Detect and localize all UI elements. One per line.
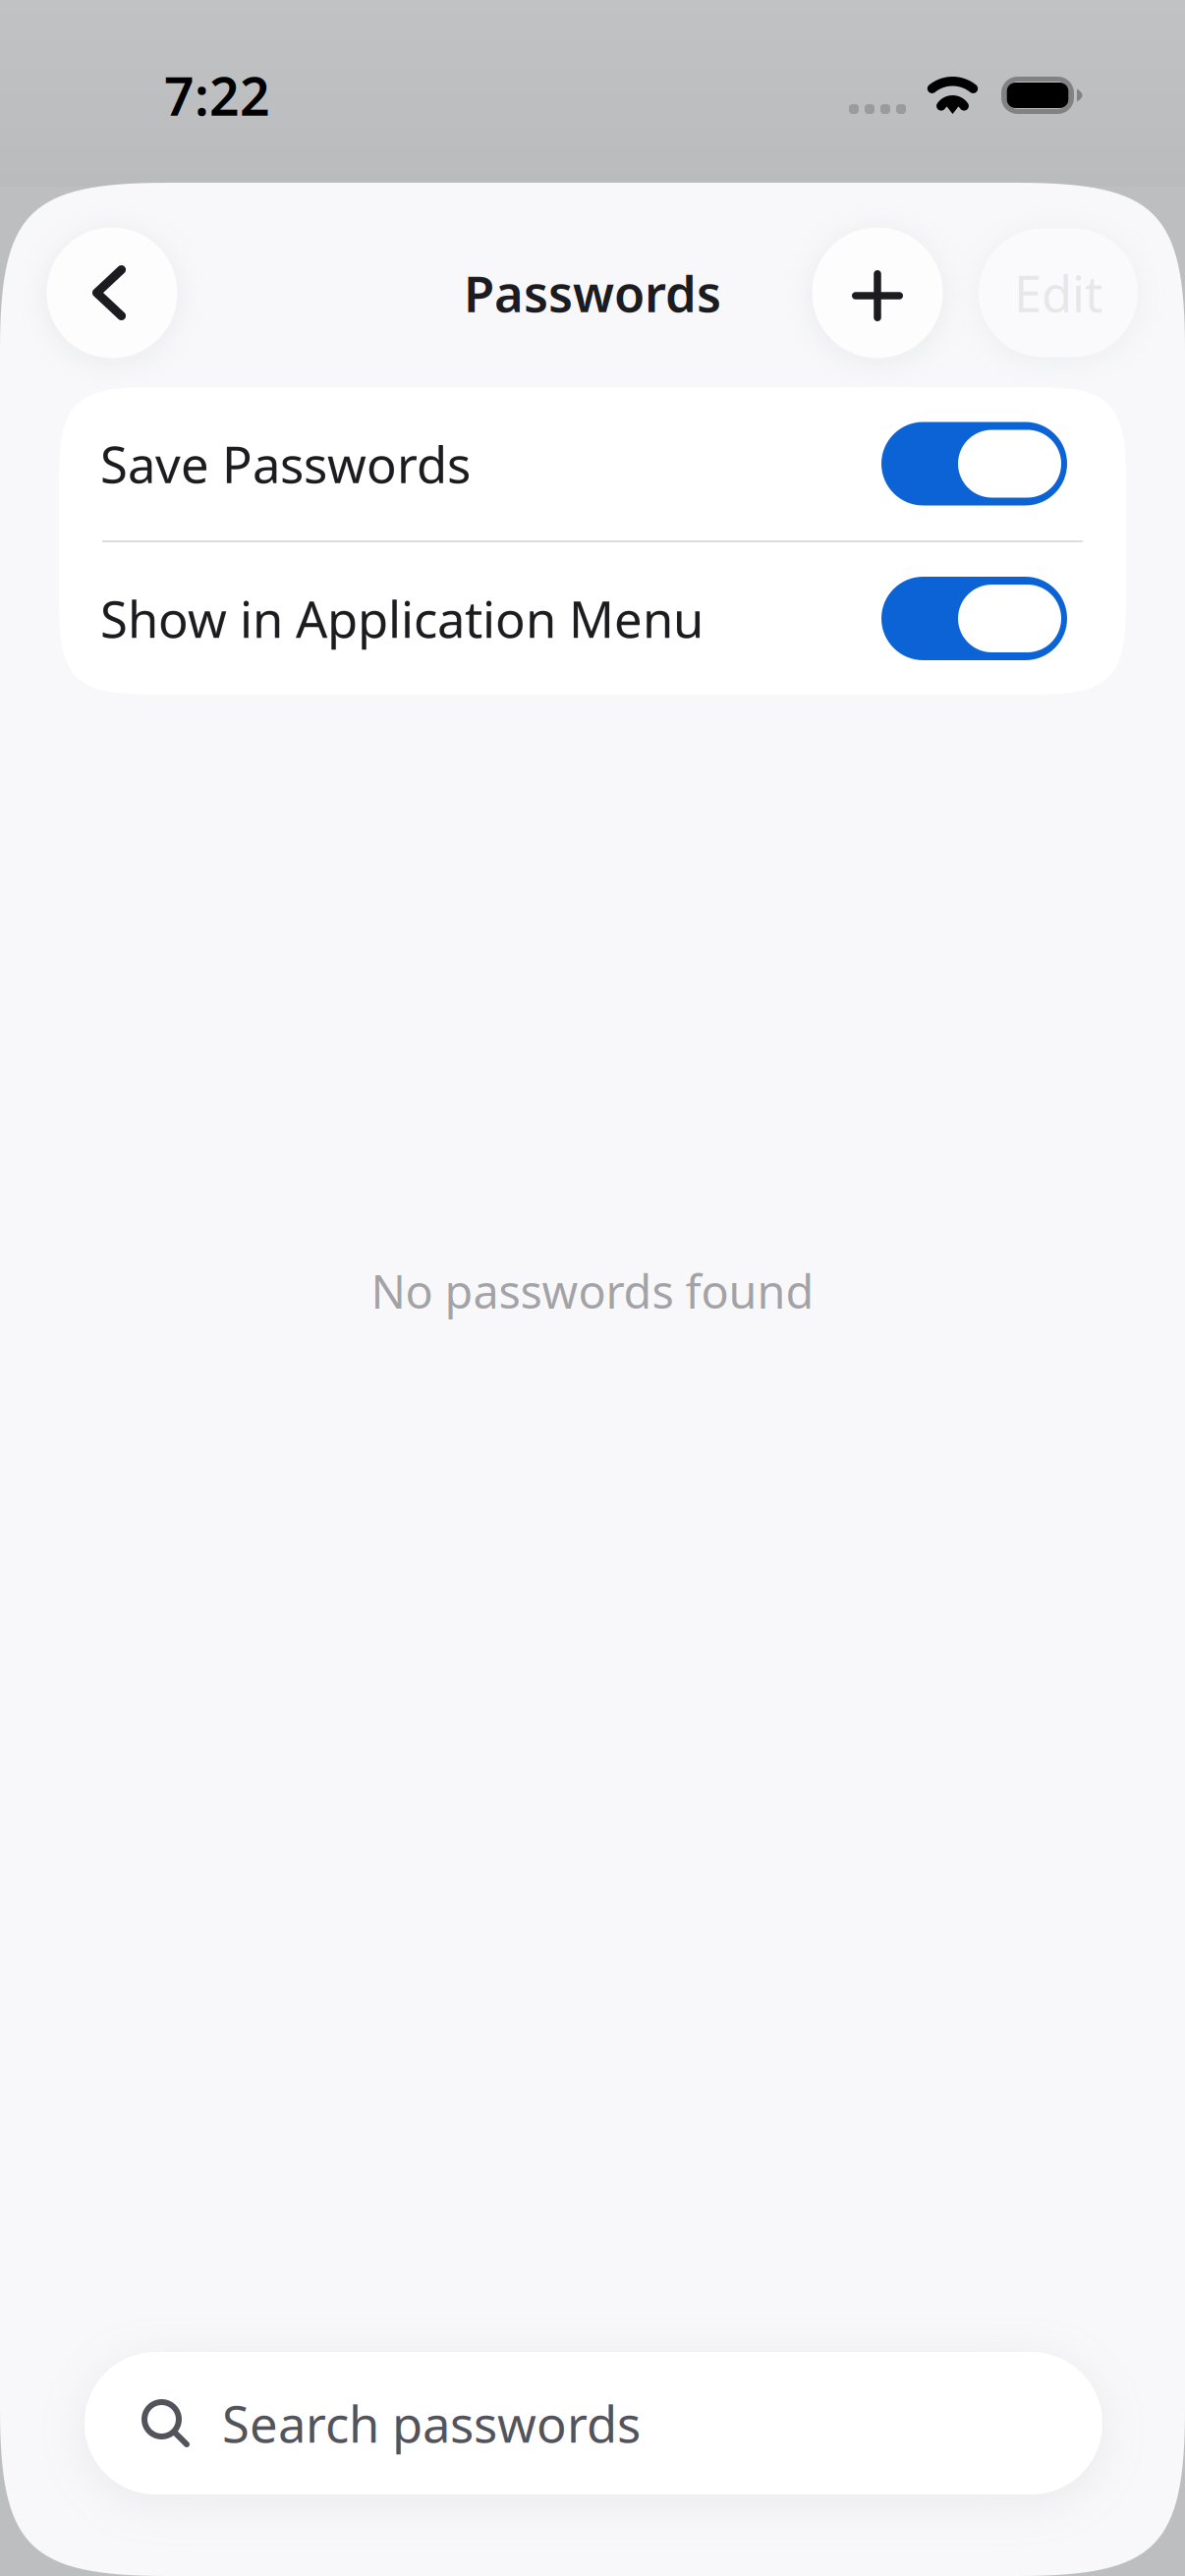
staticText: Save Passwords: [100, 431, 471, 497]
staticText: Show in Application Menu: [100, 585, 704, 652]
button[interactable]: Back: [47, 227, 177, 358]
staticText: Edit: [1014, 260, 1102, 326]
staticText: 7:22: [164, 61, 270, 130]
button[interactable]: Search passwords: [85, 2352, 1102, 2494]
button[interactable]: Add password: [812, 227, 943, 358]
button[interactable]: Edit: [979, 228, 1138, 357]
button[interactable]: Save Passwords: [59, 387, 1126, 540]
staticText: Search passwords: [222, 2390, 641, 2456]
staticText: Passwords: [464, 260, 721, 326]
button[interactable]: Show in Application Menu: [59, 542, 1126, 695]
staticText: No passwords found: [371, 1260, 814, 1321]
